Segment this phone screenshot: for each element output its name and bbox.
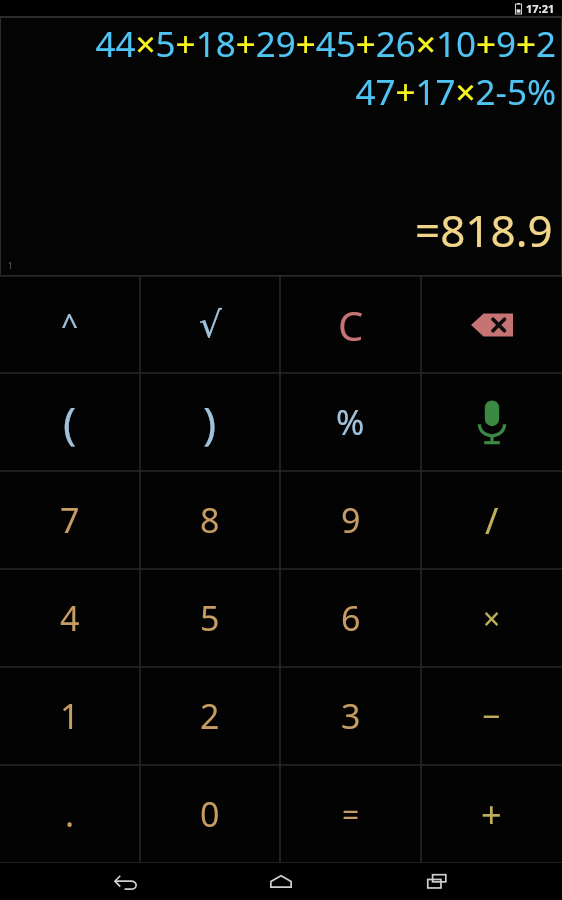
button[interactable]: 2 <box>140 667 280 765</box>
button[interactable]: 1 <box>0 667 140 765</box>
button[interactable]: C <box>280 276 421 373</box>
button[interactable]: − <box>421 667 562 765</box>
staticText: = <box>342 794 360 835</box>
button[interactable]: 0 <box>140 765 280 863</box>
staticText: % <box>336 399 365 445</box>
staticText: 4 <box>60 595 80 641</box>
staticText: ( <box>63 392 77 452</box>
staticText: 0 <box>200 791 220 837</box>
button[interactable]: . <box>0 765 140 863</box>
staticText: 5 <box>200 595 220 641</box>
staticText: 6 <box>341 595 361 641</box>
staticText: 1 <box>8 260 13 271</box>
button[interactable]: Backspace <box>421 276 562 373</box>
staticText: 3 <box>341 693 361 739</box>
button[interactable]: ( <box>0 373 140 471</box>
button[interactable]: % <box>280 373 421 471</box>
staticText: × <box>483 598 501 639</box>
staticText: ^ <box>61 304 79 345</box>
button[interactable]: = <box>280 765 421 863</box>
button[interactable]: Home <box>251 863 311 900</box>
staticText: 47+17×2-5% <box>6 68 556 116</box>
button[interactable]: Back <box>96 863 156 900</box>
staticText: − <box>482 694 501 738</box>
button[interactable]: / <box>421 471 562 569</box>
button[interactable]: ) <box>140 373 280 471</box>
staticText: 8 <box>200 497 220 543</box>
button[interactable]: + <box>421 765 562 863</box>
button[interactable]: 5 <box>140 569 280 667</box>
button[interactable]: Recent apps <box>407 863 467 900</box>
staticText: =818.9 <box>415 200 553 260</box>
button[interactable]: 9 <box>280 471 421 569</box>
staticText: 1 <box>60 693 80 739</box>
button[interactable]: 3 <box>280 667 421 765</box>
button[interactable]: 8 <box>140 471 280 569</box>
staticText: ) <box>203 392 217 452</box>
staticText: . <box>65 791 75 837</box>
staticText: 7 <box>60 497 80 543</box>
staticText: 2 <box>200 693 220 739</box>
staticText: 44×5+18+29+45+26×10+9+2 <box>6 20 556 68</box>
button[interactable]: 4 <box>0 569 140 667</box>
button[interactable]: Voice input <box>421 373 562 471</box>
staticText: 9 <box>341 497 361 543</box>
button[interactable]: ^ <box>0 276 140 373</box>
button[interactable]: 6 <box>280 569 421 667</box>
button[interactable]: √ <box>140 276 280 373</box>
staticText: 17:21 <box>526 1 555 16</box>
staticText: + <box>481 790 502 839</box>
button[interactable]: × <box>421 569 562 667</box>
staticText: / <box>485 496 499 545</box>
staticText: C <box>338 298 364 352</box>
button[interactable]: 7 <box>0 471 140 569</box>
staticText: √ <box>199 304 222 346</box>
